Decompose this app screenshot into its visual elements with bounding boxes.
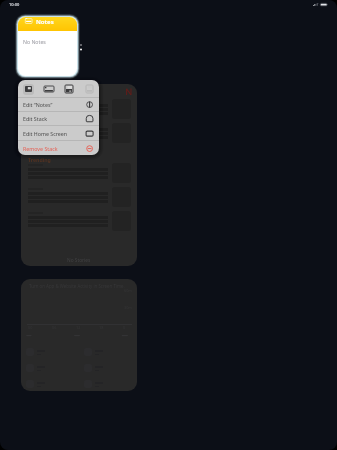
staticText: Trending (28, 156, 51, 163)
staticText: No Notes (23, 38, 46, 45)
staticText: Notes (36, 17, 54, 25)
staticText: Edit Stack (23, 115, 86, 122)
staticText: Remove Stack (23, 145, 86, 152)
button[interactable]: Widget size option 3 (59, 81, 79, 97)
staticText: Edit “Notes” (23, 101, 86, 108)
button[interactable]: Edit Stack (18, 112, 99, 125)
button[interactable]: Notes (18, 17, 77, 76)
staticText: Top Stories (28, 88, 57, 95)
button[interactable]: Widget size option 4 (79, 81, 99, 97)
button[interactable]: Widget size option 1 (18, 81, 39, 97)
button[interactable]: Remove Stack (18, 141, 99, 155)
button[interactable]: Edit “Notes” (18, 98, 99, 111)
staticText: Edit Home Screen (23, 130, 86, 137)
button[interactable]: Widget size option 2 (39, 81, 59, 97)
button[interactable]: Top Stories (21, 84, 137, 266)
staticText: 10:00 (9, 2, 20, 7)
button[interactable]: Edit Home Screen (18, 126, 99, 140)
staticText: No Stories (67, 257, 91, 264)
